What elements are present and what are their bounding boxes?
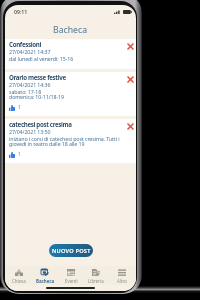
- staticText: Altro: [117, 278, 127, 284]
- button[interactable]: Elimina: [125, 74, 135, 84]
- button[interactable]: Altro: [110, 269, 134, 288]
- staticText: catechesi post cresima: [9, 120, 72, 128]
- button[interactable]: Eventi: [59, 269, 83, 288]
- staticText: Libreria: [88, 278, 104, 284]
- button[interactable]: Libreria: [84, 269, 108, 288]
- staticText: iniziano i corsi di catechesi post cresi…: [9, 135, 120, 148]
- button[interactable]: Chiesa: [7, 269, 31, 288]
- staticText: Bacheca: [53, 24, 88, 36]
- staticText: Confessioni: [9, 40, 42, 48]
- button[interactable]: catechesi post cresima: [5, 119, 136, 163]
- button[interactable]: Bacheca: [33, 269, 57, 288]
- staticText: 27/04/2021 14:36: [9, 81, 51, 88]
- staticText: 27/04/2021 14:37: [9, 48, 51, 55]
- button[interactable]: Orario messe festive: [5, 72, 136, 116]
- button[interactable]: Confessioni: [5, 39, 136, 69]
- staticText: 09:11: [14, 8, 28, 15]
- button[interactable]: NUOVO POST: [49, 244, 93, 257]
- staticText: 1: [18, 151, 21, 158]
- staticText: 27/04/2021 13:50: [9, 128, 51, 135]
- staticText: Chiesa: [12, 278, 26, 284]
- staticText: 1: [18, 104, 21, 111]
- button[interactable]: Elimina: [125, 41, 135, 51]
- staticText: NUOVO POST: [52, 247, 91, 255]
- staticText: Bacheca: [36, 278, 55, 284]
- staticText: Eventi: [65, 278, 78, 284]
- staticText: sabato: 17-18 domenica: 10-11/18-19: [9, 88, 64, 101]
- staticText: dal lunedì al venerdì: 15-16: [9, 55, 74, 62]
- button[interactable]: Elimina: [125, 121, 135, 131]
- staticText: Orario messe festive: [9, 73, 66, 81]
